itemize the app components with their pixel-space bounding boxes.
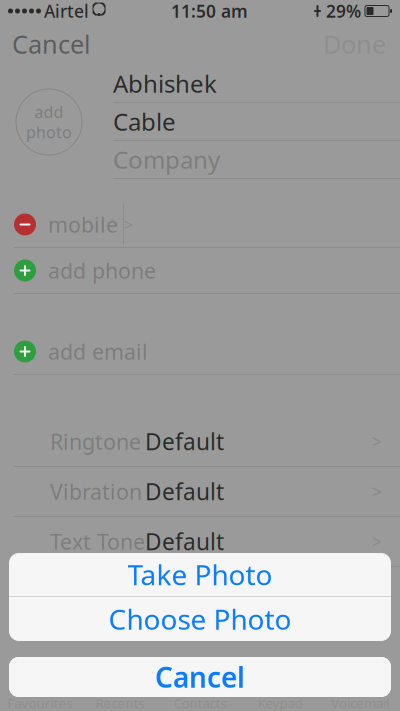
staticText: Default	[145, 426, 224, 456]
staticText: Ringtone	[50, 427, 141, 456]
staticText: Recents	[95, 694, 144, 711]
button[interactable]: add phone	[0, 248, 400, 293]
staticText: add phone	[48, 256, 156, 285]
staticText: photo	[26, 121, 72, 143]
staticText: >	[372, 430, 382, 453]
staticText: Contacts	[173, 694, 226, 711]
staticText: 29%	[326, 0, 361, 22]
button[interactable]: Ringtone	[0, 417, 400, 466]
button[interactable]: Done	[309, 22, 400, 66]
staticText: Text Tone	[50, 527, 145, 556]
button[interactable]: Add photo	[16, 89, 82, 155]
button[interactable]: Contacts	[160, 694, 240, 711]
staticText: Keypad	[257, 694, 302, 711]
staticText: Cancel	[155, 658, 245, 696]
staticText: 11:50 am	[171, 0, 248, 22]
staticText: Default	[145, 526, 224, 556]
staticText: Favourites	[7, 694, 72, 711]
staticText: Airtel	[44, 0, 89, 22]
staticText: >	[372, 530, 382, 553]
staticText: >	[124, 214, 133, 235]
staticText: Voicemail	[331, 694, 389, 711]
button[interactable]: Cancel	[9, 657, 391, 697]
staticText: Take Photo	[127, 556, 272, 593]
staticText: Vibration	[50, 477, 142, 506]
staticText: Abhishek	[113, 68, 217, 99]
button[interactable]: Vibration	[0, 467, 400, 516]
button[interactable]: Cancel	[0, 22, 103, 66]
staticText: >	[372, 480, 382, 503]
button[interactable]: Recents	[80, 694, 160, 711]
staticText: add email	[48, 337, 148, 366]
button[interactable]: Keypad	[240, 694, 320, 711]
staticText: Cable	[113, 106, 176, 137]
staticText: Company	[113, 144, 220, 175]
button[interactable]: mobile	[0, 202, 400, 247]
staticText: mobile	[48, 210, 118, 239]
button[interactable]: add email	[0, 329, 400, 374]
staticText: add	[34, 101, 63, 122]
staticText: Done	[323, 27, 386, 61]
button[interactable]: Voicemail	[320, 694, 400, 711]
button[interactable]: Text Tone	[0, 517, 400, 566]
staticText: Default	[145, 476, 224, 506]
staticText: Cancel	[12, 27, 91, 61]
staticText: Choose Photo	[108, 600, 291, 638]
button[interactable]: Take Photo	[9, 553, 391, 596]
button[interactable]: Choose Photo	[9, 597, 391, 641]
button[interactable]: Favourites	[0, 694, 80, 711]
